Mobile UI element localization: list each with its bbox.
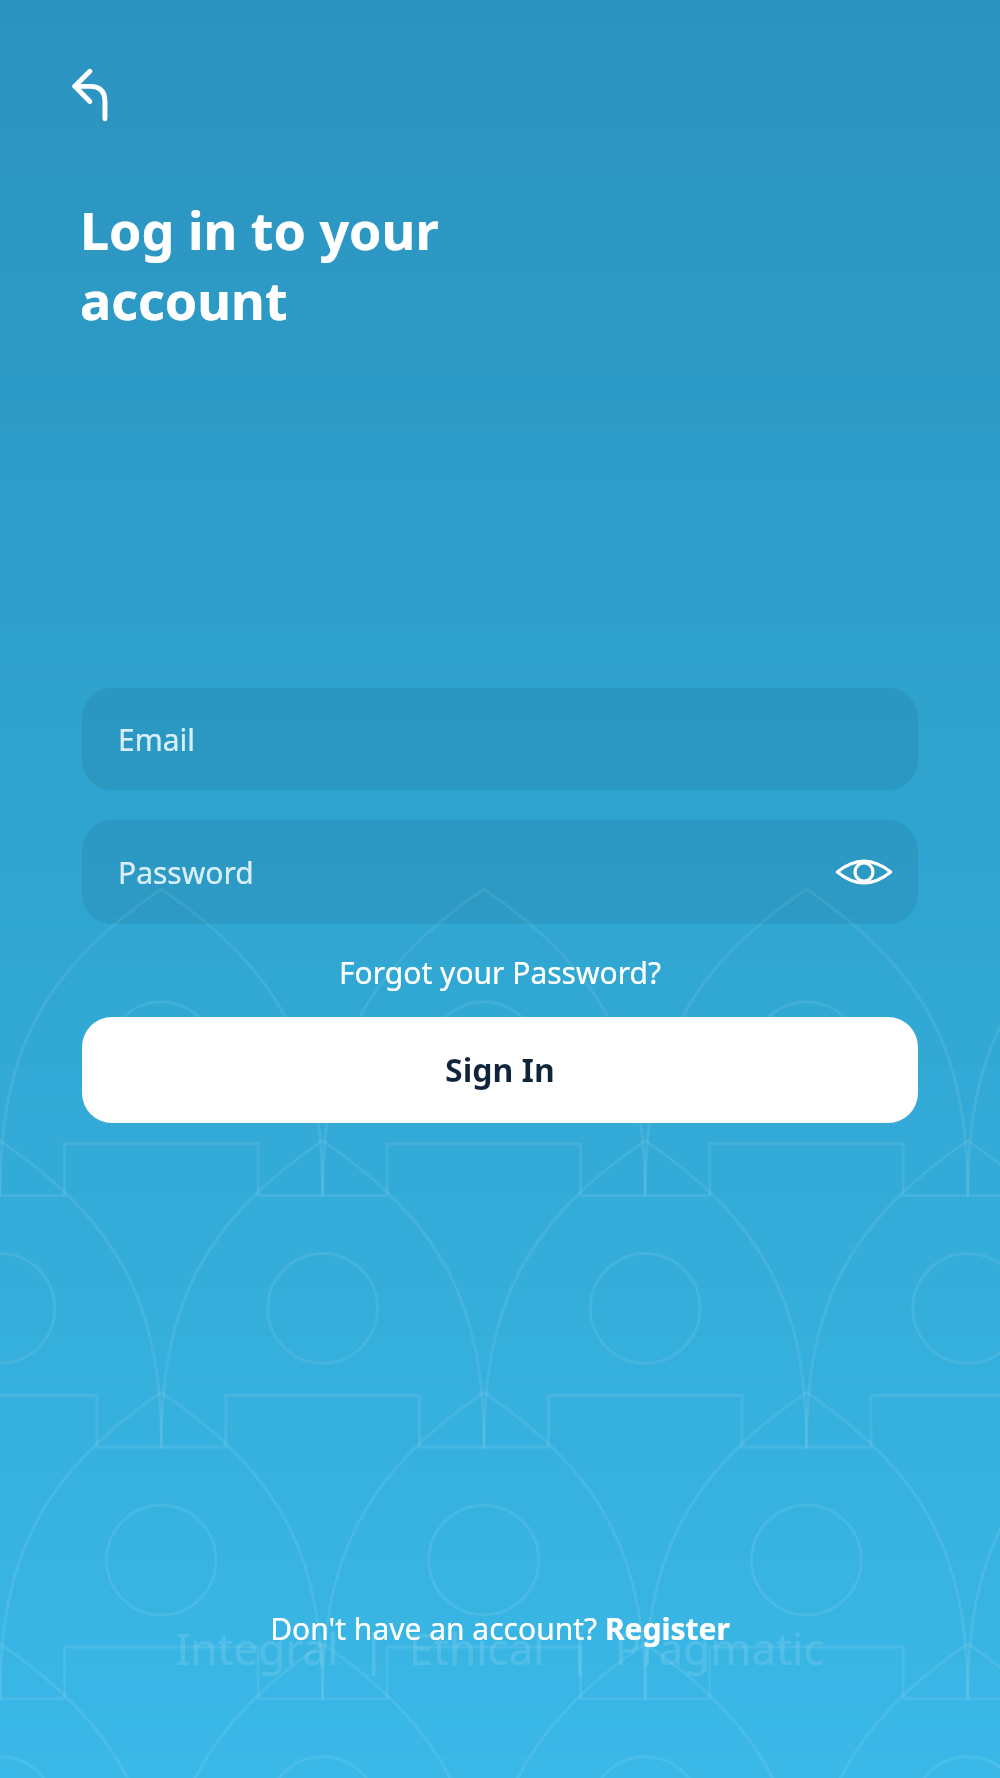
button[interactable]: Show password [830, 838, 898, 906]
button[interactable]: Forgot your Password? [327, 946, 673, 999]
button[interactable]: Password [82, 820, 918, 924]
staticText: Forgot your Password? [339, 952, 661, 993]
staticText: Log in to your account [80, 194, 520, 335]
staticText: Password [118, 852, 254, 893]
button[interactable]: Don't have an account? Register [260, 1602, 740, 1655]
staticText: Integral | Ethical | Pragmatic [175, 1618, 825, 1678]
staticText: Sign In [445, 1048, 555, 1092]
staticText: Email [118, 719, 196, 760]
button[interactable]: Sign In [82, 1017, 918, 1123]
button[interactable]: Back [62, 55, 134, 127]
staticText: Don't have an account? Register [270, 1608, 730, 1649]
button[interactable]: Email [82, 688, 918, 790]
